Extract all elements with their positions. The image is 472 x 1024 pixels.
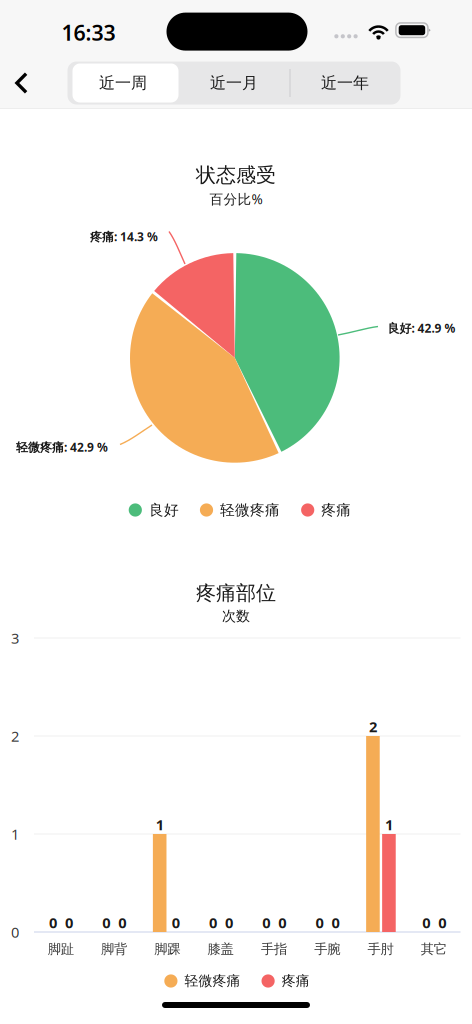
staticText: 0 <box>225 913 233 932</box>
staticText: 其它 <box>421 941 447 957</box>
staticText: 轻微疼痛 <box>220 501 280 519</box>
staticText: 良好: 42.9 % <box>387 320 455 336</box>
staticText: 膝盖 <box>208 941 234 957</box>
staticText: 0 <box>209 913 217 932</box>
staticText: 0 <box>102 913 110 932</box>
staticText: 疼痛部位 <box>196 581 276 605</box>
staticText: 1 <box>385 815 393 834</box>
button[interactable]: 近一周 <box>67 61 178 104</box>
staticText: 手腕 <box>314 941 340 957</box>
button[interactable]: Back <box>0 61 43 105</box>
staticText: 手肘 <box>367 941 393 957</box>
staticText: 0 <box>422 913 430 932</box>
staticText: 1 <box>11 824 19 844</box>
button[interactable]: 近一月 <box>178 61 289 104</box>
staticText: 16:33 <box>61 18 115 46</box>
staticText: 0 <box>172 913 180 932</box>
staticText: 疼痛: 14.3 % <box>90 228 158 244</box>
staticText: 百分比% <box>209 190 262 208</box>
staticText: 0 <box>65 913 73 932</box>
staticText: 0 <box>262 913 270 932</box>
staticText: 近一月 <box>210 73 258 93</box>
staticText: 手指 <box>261 941 287 957</box>
button[interactable]: 近一年 <box>289 61 400 104</box>
staticText: 近一年 <box>321 73 369 93</box>
staticText: 0 <box>332 913 340 932</box>
staticText: 1 <box>156 815 164 834</box>
staticText: 0 <box>278 913 286 932</box>
staticText: 次数 <box>222 607 250 625</box>
staticText: 0 <box>11 922 19 942</box>
staticText: 轻微疼痛 <box>184 972 240 990</box>
staticText: 0 <box>118 913 126 932</box>
staticText: 轻微疼痛: 42.9 % <box>16 439 108 455</box>
staticText: 脚趾 <box>48 941 74 957</box>
staticText: 近一周 <box>99 73 147 93</box>
staticText: 脚背 <box>101 941 127 957</box>
staticText: 2 <box>369 717 377 736</box>
staticText: 脚踝 <box>154 941 180 957</box>
staticText: 0 <box>49 913 57 932</box>
staticText: 疼痛 <box>282 972 310 990</box>
staticText: 0 <box>316 913 324 932</box>
staticText: 疼痛 <box>321 501 351 519</box>
staticText: 0 <box>438 913 446 932</box>
staticText: 2 <box>11 726 19 746</box>
staticText: 3 <box>11 628 19 648</box>
staticText: 良好 <box>149 501 179 519</box>
staticText: 状态感受 <box>196 163 276 187</box>
